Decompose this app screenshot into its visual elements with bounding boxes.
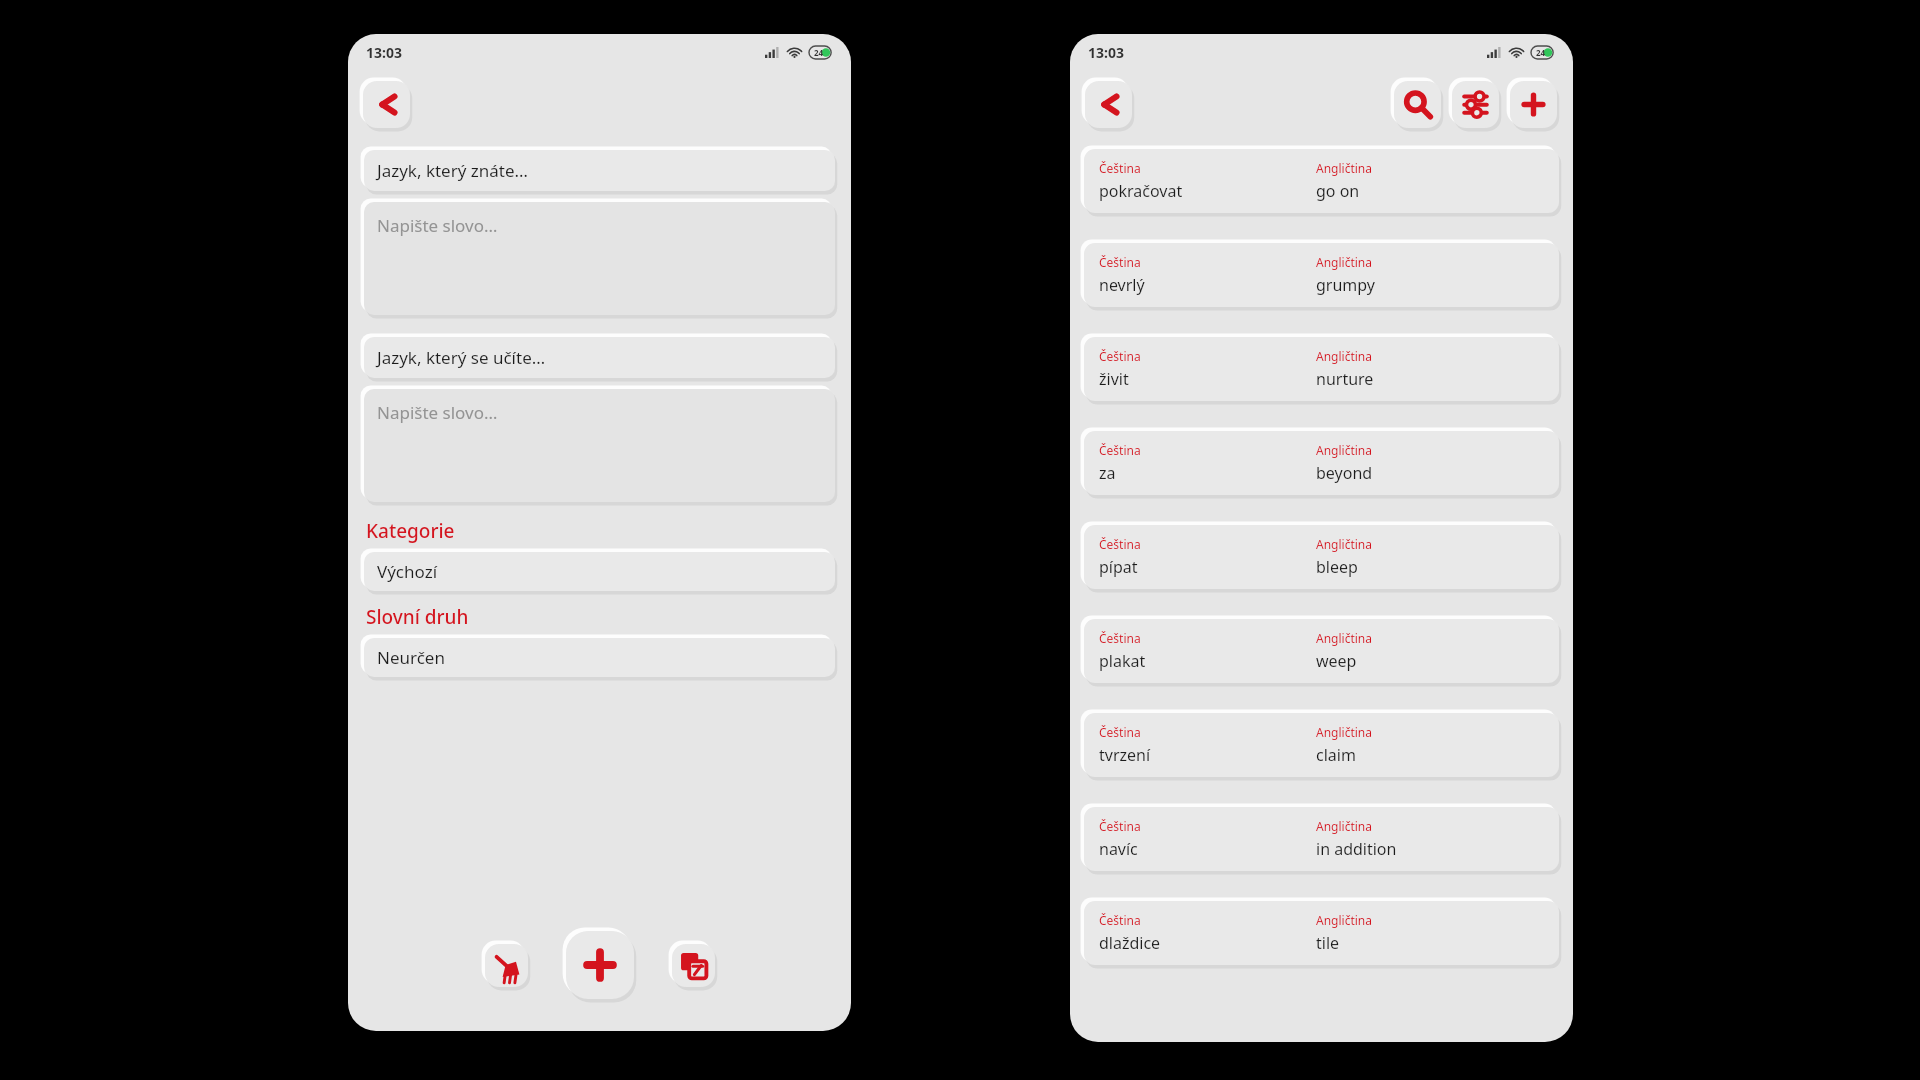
staticText: Jazyk, který se učíte…: [377, 346, 546, 369]
staticText: Angličtina: [1316, 348, 1372, 364]
staticText: 24: [1536, 47, 1546, 58]
staticText: Výchozí: [377, 560, 438, 583]
staticText: Napište slovo…: [377, 401, 498, 424]
button[interactable]: Čeština: [1084, 431, 1559, 495]
button[interactable]: Back: [363, 81, 410, 128]
staticText: go on: [1316, 180, 1360, 202]
staticText: Angličtina: [1316, 818, 1372, 834]
staticText: weep: [1316, 650, 1357, 672]
button[interactable]: Clear: [485, 944, 528, 987]
button[interactable]: Čeština: [1084, 243, 1559, 307]
staticText: Angličtina: [1316, 254, 1372, 270]
staticText: tvrzení: [1099, 744, 1151, 766]
button[interactable]: Filter: [1452, 81, 1499, 128]
button[interactable]: Jazyk, který znáte…: [364, 150, 835, 191]
button[interactable]: Jazyk, který se učíte…: [364, 337, 835, 378]
staticText: plakat: [1099, 650, 1146, 672]
button[interactable]: Kategorie: [366, 518, 455, 544]
staticText: Čeština: [1099, 630, 1141, 646]
staticText: Čeština: [1099, 254, 1141, 270]
staticText: pípat: [1099, 556, 1138, 578]
button[interactable]: Neurčen: [364, 638, 835, 677]
staticText: Neurčen: [377, 646, 445, 669]
staticText: Napište slovo…: [377, 214, 498, 237]
button[interactable]: Napište slovo…: [364, 389, 835, 502]
staticText: Angličtina: [1316, 442, 1372, 458]
staticText: Angličtina: [1316, 724, 1372, 740]
staticText: 13:03: [1088, 43, 1124, 62]
button[interactable]: Čeština: [1084, 807, 1559, 871]
staticText: Čeština: [1099, 348, 1141, 364]
button[interactable]: Čeština: [1084, 619, 1559, 683]
staticText: Čeština: [1099, 912, 1141, 928]
button[interactable]: Napište slovo…: [364, 202, 835, 315]
staticText: tile: [1316, 932, 1340, 954]
button[interactable]: Čeština: [1084, 149, 1559, 213]
button[interactable]: Back: [1085, 81, 1132, 128]
staticText: nurture: [1316, 368, 1374, 390]
staticText: Čeština: [1099, 160, 1141, 176]
staticText: za: [1099, 462, 1116, 484]
button[interactable]: Čeština: [1084, 525, 1559, 589]
button[interactable]: Čeština: [1084, 713, 1559, 777]
button[interactable]: Add word: [566, 931, 634, 999]
button[interactable]: Add: [1510, 81, 1557, 128]
button[interactable]: Výchozí: [364, 552, 835, 591]
button[interactable]: Search: [1394, 81, 1441, 128]
staticText: Angličtina: [1316, 160, 1372, 176]
staticText: Čeština: [1099, 536, 1141, 552]
staticText: 24: [814, 47, 824, 58]
staticText: Angličtina: [1316, 630, 1372, 646]
button[interactable]: Translate: [672, 944, 715, 987]
button[interactable]: Slovní druh: [366, 604, 469, 630]
staticText: dlaždice: [1099, 932, 1161, 954]
button[interactable]: Čeština: [1084, 337, 1559, 401]
staticText: pokračovat: [1099, 180, 1183, 202]
staticText: bleep: [1316, 556, 1358, 578]
staticText: claim: [1316, 744, 1356, 766]
staticText: 13:03: [366, 43, 402, 62]
staticText: Angličtina: [1316, 912, 1372, 928]
staticText: Čeština: [1099, 818, 1141, 834]
staticText: Angličtina: [1316, 536, 1372, 552]
staticText: živit: [1099, 368, 1129, 390]
staticText: Čeština: [1099, 724, 1141, 740]
button[interactable]: Čeština: [1084, 901, 1559, 965]
staticText: grumpy: [1316, 274, 1375, 296]
staticText: beyond: [1316, 462, 1373, 484]
staticText: in addition: [1316, 838, 1397, 860]
staticText: navíc: [1099, 838, 1138, 860]
staticText: Čeština: [1099, 442, 1141, 458]
staticText: Jazyk, který znáte…: [377, 159, 529, 182]
staticText: nevrlý: [1099, 274, 1145, 296]
